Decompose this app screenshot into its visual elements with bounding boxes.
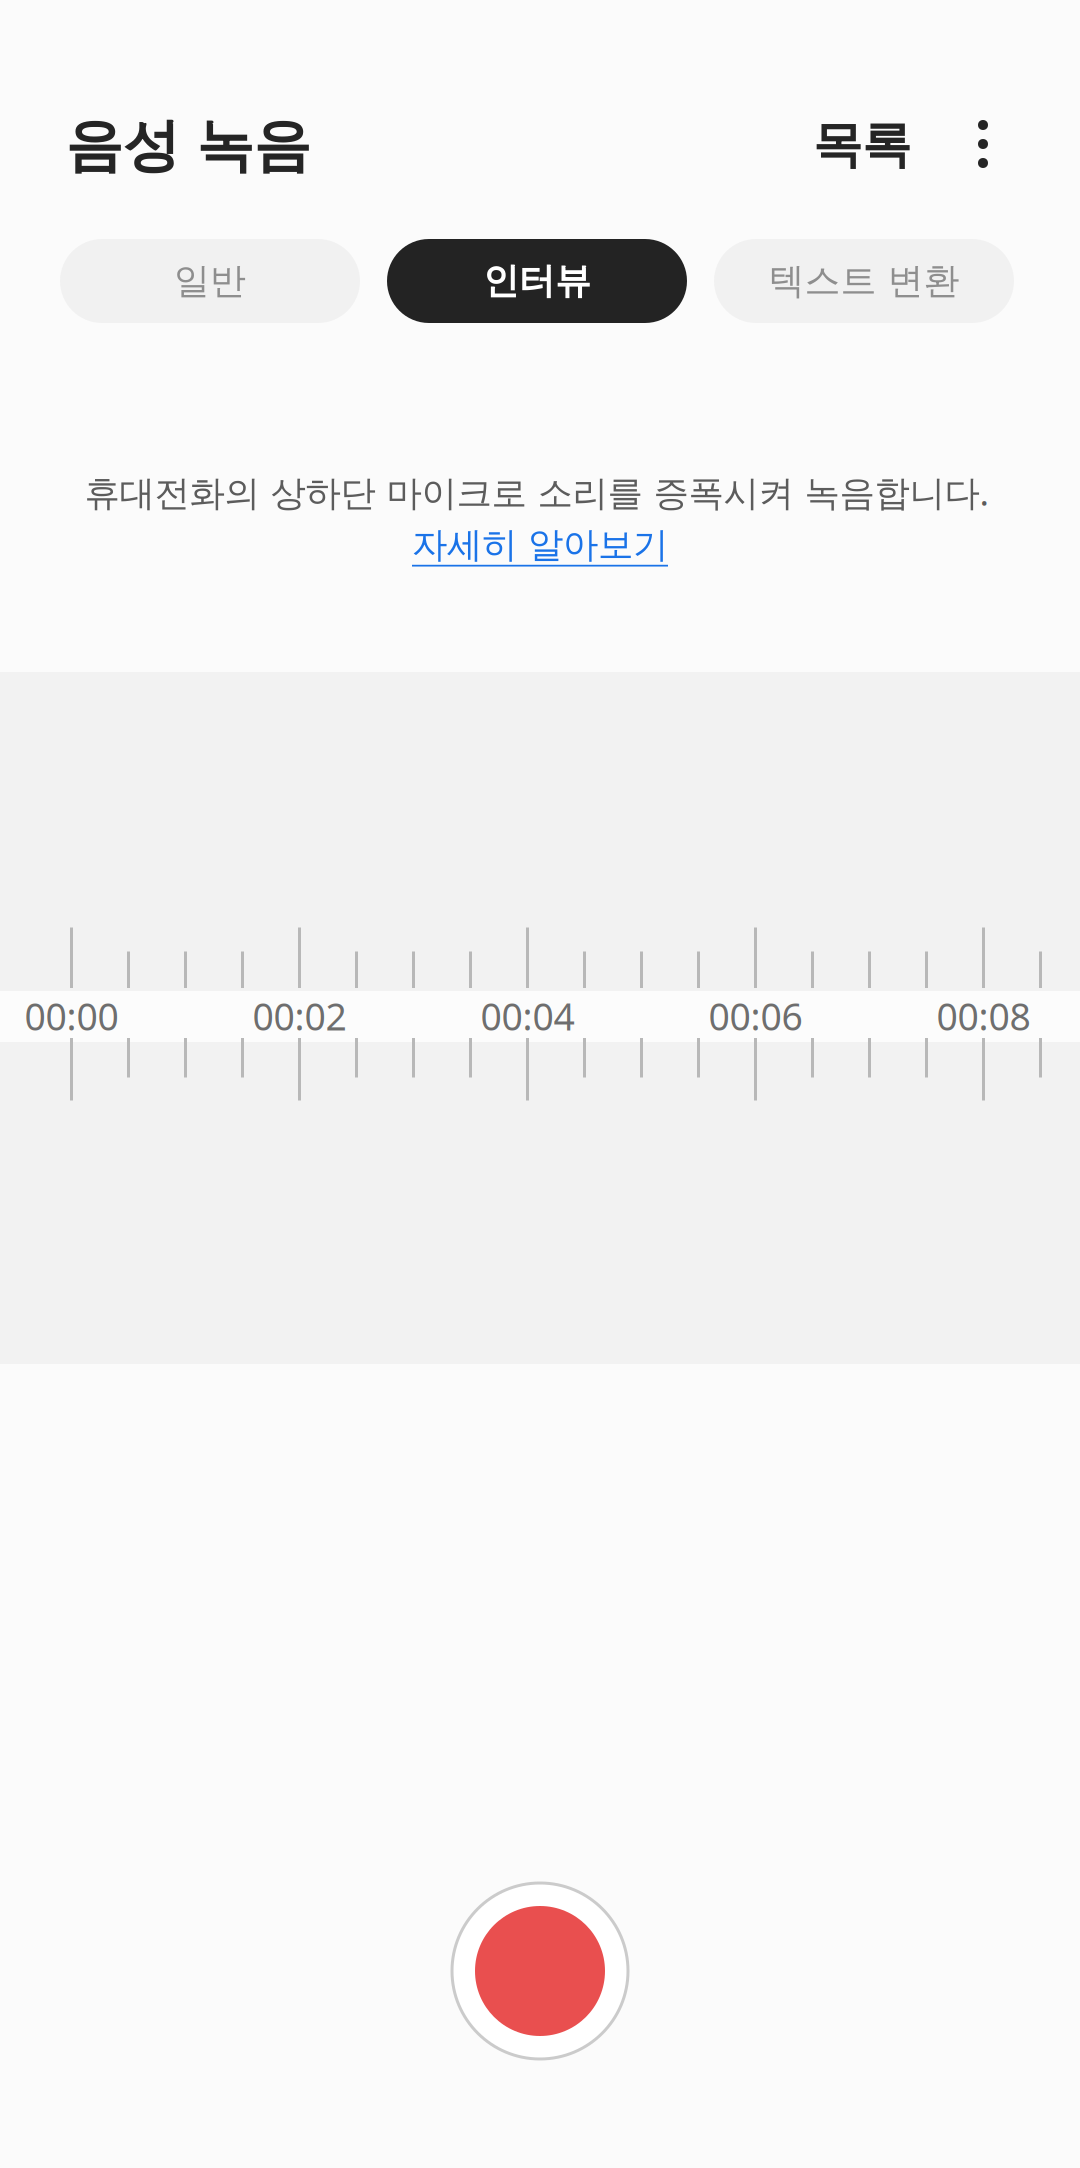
staticText: 인터뷰	[483, 259, 591, 303]
staticText: 텍스트 변환	[768, 259, 959, 303]
button[interactable]: 자세히 알아보기	[390, 510, 690, 580]
staticText: 음성 녹음	[65, 111, 310, 181]
staticText: 00:00	[24, 991, 118, 1041]
staticText: 00:06	[708, 991, 802, 1041]
button[interactable]: More options	[935, 96, 1031, 192]
button[interactable]: 목록	[787, 90, 937, 200]
staticText: 00:04	[480, 991, 574, 1041]
staticText: 목록	[813, 115, 911, 175]
button[interactable]: Record	[440, 1871, 640, 2071]
staticText: 00:02	[252, 991, 346, 1041]
staticText: 자세히 알아보기	[412, 523, 668, 567]
staticText: 휴대전화의 상하단 마이크로 소리를 증폭시켜 녹음합니다.	[84, 468, 989, 516]
staticText: 일반	[174, 259, 246, 303]
button[interactable]: 인터뷰	[387, 239, 687, 323]
button[interactable]: 일반	[60, 239, 360, 323]
staticText: 00:08	[936, 991, 1030, 1041]
button[interactable]: 텍스트 변환	[714, 239, 1014, 323]
